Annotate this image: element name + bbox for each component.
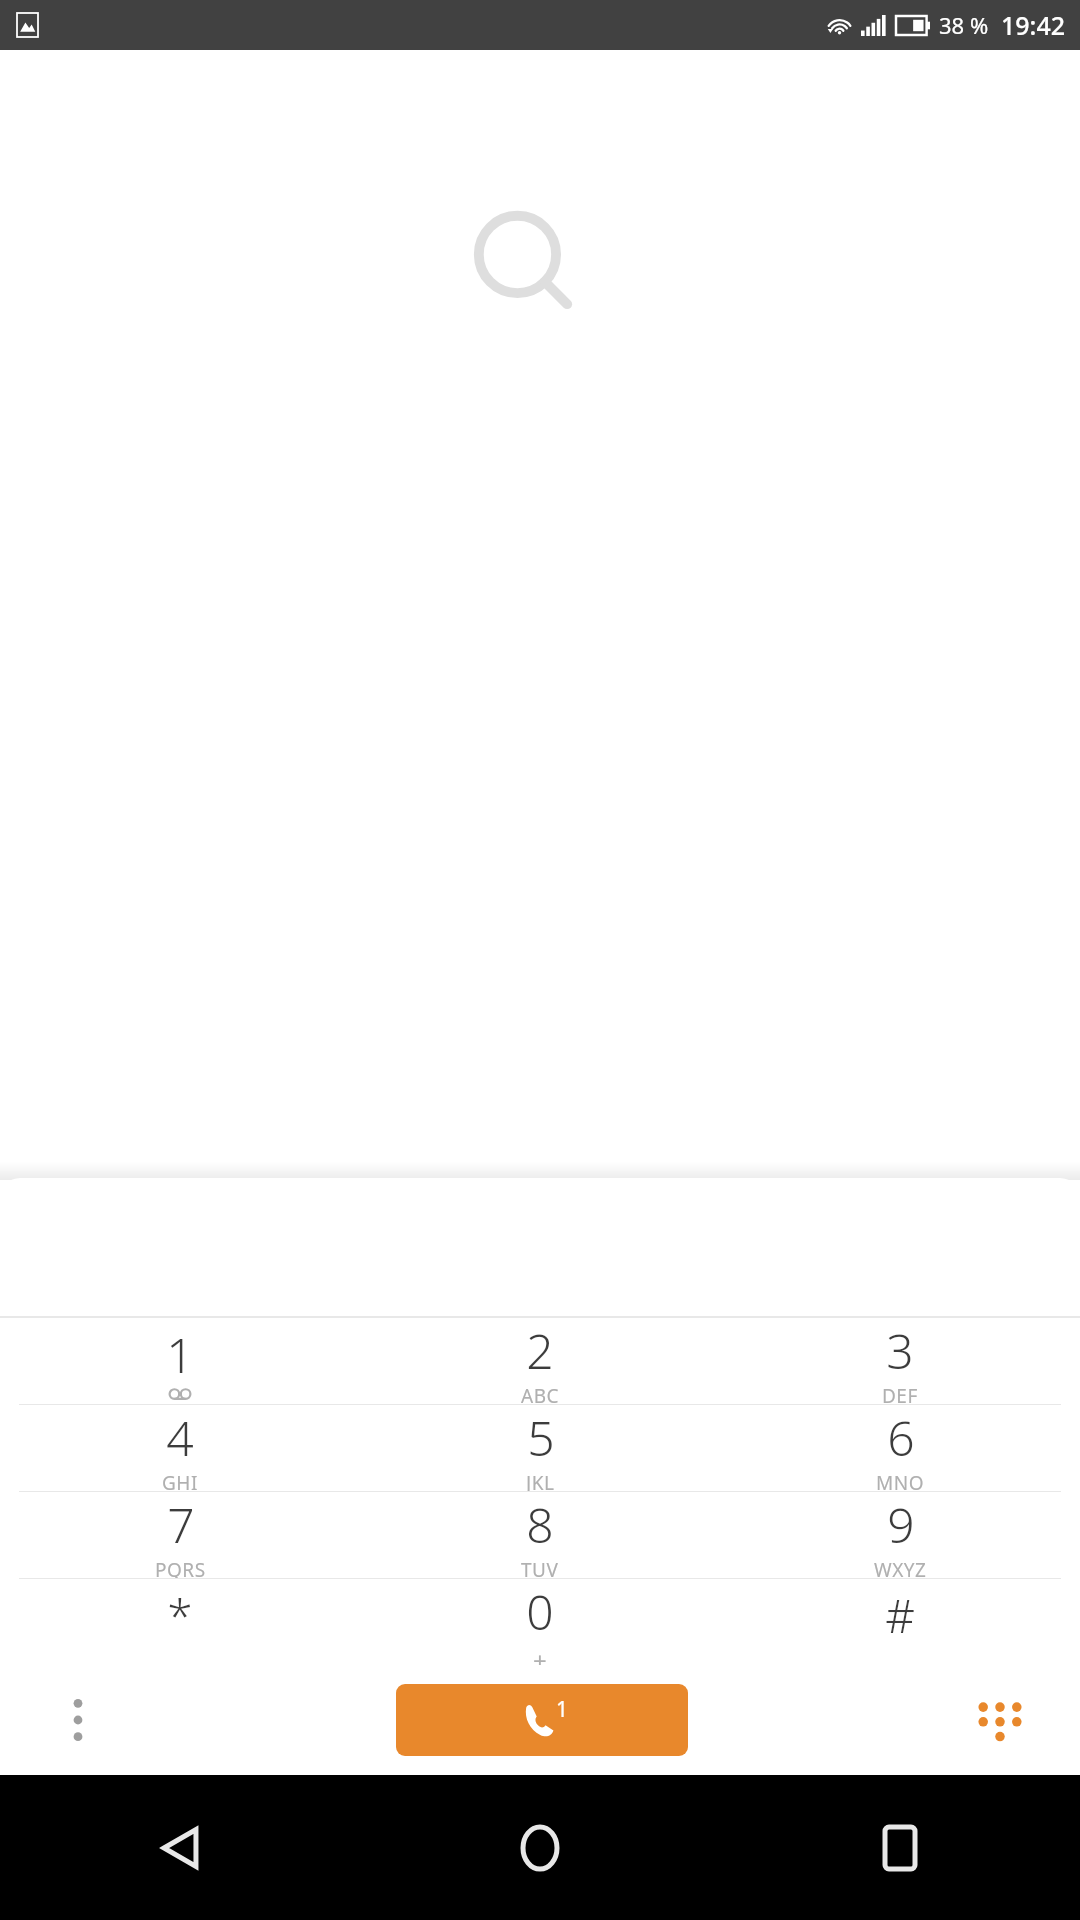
staticText: DEF [882,1383,918,1404]
staticText: 8 [526,1492,554,1557]
staticText: # [885,1584,915,1647]
button[interactable]: 1 [0,1318,360,1404]
staticText: 5 [527,1405,555,1470]
button[interactable]: Recent apps [720,1775,1080,1920]
button[interactable]: 3 [720,1318,1080,1404]
staticText: TUV [521,1557,559,1578]
staticText: 38 % [939,10,989,40]
button[interactable]: 7 [0,1492,360,1578]
staticText: + [533,1644,547,1665]
staticText: PQRS [155,1557,206,1578]
button[interactable]: * [0,1579,360,1665]
staticText: 3 [886,1318,914,1383]
staticText: 2 [526,1318,554,1383]
staticText: * [167,1584,193,1647]
staticText: 0 [526,1579,554,1644]
staticText: MNO [876,1470,925,1491]
staticText: ABC [521,1383,559,1404]
button[interactable]: Call [396,1684,688,1756]
staticText: 1 [556,1695,569,1724]
button[interactable]: Hide keypad [962,1682,1038,1758]
button[interactable]: More options [50,1692,106,1748]
staticText: 9 [887,1492,915,1557]
staticText: 6 [887,1405,915,1470]
button[interactable]: Back [0,1775,360,1920]
button[interactable]: 2 [360,1318,720,1404]
staticText: 19:42 [1001,8,1066,42]
button[interactable]: 0 [360,1579,720,1665]
staticText: WXYZ [874,1557,927,1578]
staticText: 4 [166,1405,194,1470]
staticText: JKL [526,1470,555,1491]
button[interactable]: 8 [360,1492,720,1578]
button[interactable]: 6 [720,1405,1080,1491]
button[interactable]: 9 [720,1492,1080,1578]
button[interactable]: Home [360,1775,720,1920]
button[interactable]: 5 [360,1405,720,1491]
button[interactable]: 4 [0,1405,360,1491]
staticText: 7 [167,1492,195,1557]
staticText: 1 [166,1322,194,1387]
button[interactable]: # [720,1579,1080,1665]
staticText: GHI [162,1470,198,1491]
